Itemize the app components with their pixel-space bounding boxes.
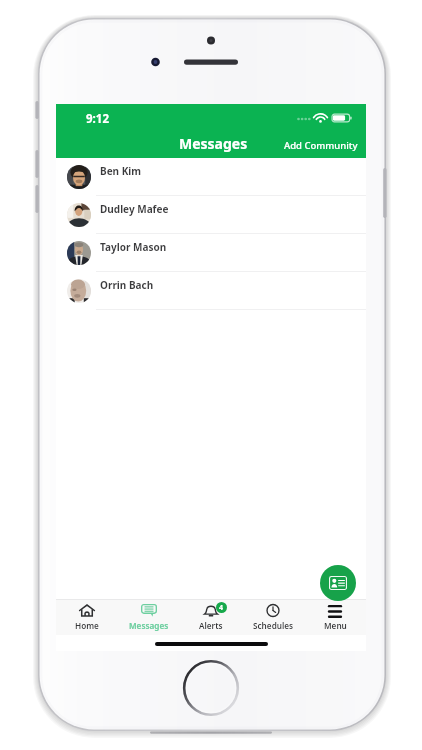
staticText: Orrin Bach xyxy=(100,278,154,292)
button[interactable]: Schedules xyxy=(242,600,304,635)
staticText: Taylor Mason xyxy=(100,240,167,254)
staticText: Menu xyxy=(324,620,347,631)
button[interactable]: New contact xyxy=(320,565,356,601)
staticText: 9:12 xyxy=(86,111,109,127)
staticText: Home xyxy=(75,620,99,631)
button[interactable]: Home xyxy=(56,600,118,635)
button[interactable]: Menu xyxy=(304,600,366,635)
button[interactable]: Add Community xyxy=(278,134,364,153)
staticText: Schedules xyxy=(253,620,294,631)
button[interactable]: 4 xyxy=(180,600,242,635)
staticText: Ben Kim xyxy=(100,164,142,178)
button[interactable]: Dudley Mafee xyxy=(56,196,366,234)
staticText: Add Community xyxy=(284,139,358,152)
staticText: 4 xyxy=(219,603,224,613)
staticText: Dudley Mafee xyxy=(100,202,169,216)
button[interactable]: Messages xyxy=(118,600,180,635)
button[interactable]: Ben Kim xyxy=(56,158,366,196)
staticText: Messages xyxy=(129,620,169,631)
staticText: Alerts xyxy=(199,620,223,631)
staticText: Messages xyxy=(179,134,248,153)
button[interactable]: Taylor Mason xyxy=(56,234,366,272)
button[interactable]: Orrin Bach xyxy=(56,272,366,310)
